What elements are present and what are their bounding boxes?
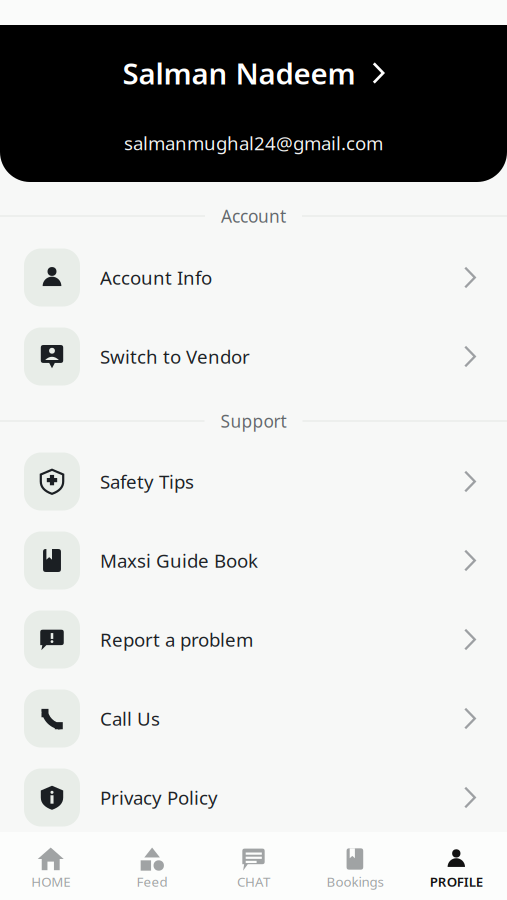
staticText: Bookings	[326, 873, 383, 890]
staticText: Support	[220, 409, 286, 432]
staticText: Call Us	[100, 706, 160, 731]
button[interactable]: Feed	[101, 832, 203, 900]
staticText: Privacy Policy	[100, 785, 218, 810]
staticText: salmanmughal24@gmail.com	[124, 131, 383, 155]
button[interactable]: Account Info	[0, 238, 507, 317]
button[interactable]: Bookings	[304, 832, 406, 900]
button[interactable]: Safety Tips	[0, 442, 507, 521]
staticText: Feed	[137, 873, 168, 890]
staticText: Salman Nadeem	[122, 53, 355, 92]
staticText: Safety Tips	[100, 469, 194, 494]
staticText: CHAT	[237, 873, 270, 890]
button[interactable]: Privacy Policy	[0, 758, 507, 837]
staticText: HOME	[31, 873, 70, 890]
staticText: PROFILE	[430, 873, 483, 890]
button[interactable]: Maxsi Guide Book	[0, 521, 507, 600]
staticText: Maxsi Guide Book	[100, 548, 258, 573]
staticText: Account Info	[100, 265, 212, 290]
button[interactable]: PROFILE	[406, 832, 507, 900]
button[interactable]: Report a problem	[0, 600, 507, 679]
button[interactable]: Switch to Vendor	[0, 317, 507, 396]
staticText: Account	[221, 204, 286, 227]
button[interactable]: HOME	[0, 832, 101, 900]
button[interactable]: CHAT	[203, 832, 304, 900]
staticText: Report a problem	[100, 627, 253, 652]
button[interactable]: Call Us	[0, 679, 507, 758]
staticText: Switch to Vendor	[100, 344, 250, 369]
